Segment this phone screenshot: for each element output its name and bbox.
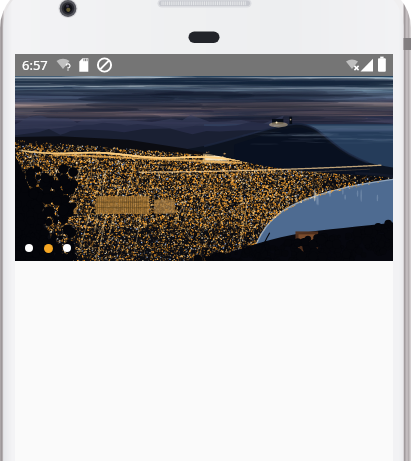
button[interactable] [25,244,33,252]
button[interactable] [63,244,71,252]
button[interactable] [15,76,393,261]
button[interactable] [44,244,53,253]
staticText: 6:57 [22,56,48,74]
